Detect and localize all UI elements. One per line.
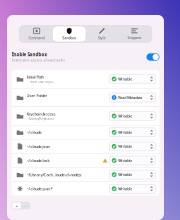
- staticText: Enable Sandbox: [11, 52, 46, 58]
- button[interactable]: Style: [85, 26, 118, 41]
- staticText: –: [24, 203, 26, 208]
- staticText: Writable: [118, 186, 132, 191]
- staticText: ~/Library/Cach…laude-cli-nodejs: [26, 172, 81, 177]
- staticText: Read Metadata: [118, 95, 142, 100]
- staticText: ~/.claude: [26, 130, 41, 135]
- button[interactable]: User Folder: [11, 88, 159, 106]
- staticText: ~/Library/Keychains: [26, 117, 53, 121]
- staticText: Keychain Access: [26, 111, 55, 117]
- staticText: Writable: [118, 144, 132, 149]
- staticText: ~/.claude.lock: [26, 158, 49, 163]
- button[interactable]: ~/.claude.json.*: [11, 182, 159, 195]
- button[interactable]: ~/.claude.json: [11, 140, 159, 153]
- staticText: Snippets: [127, 35, 141, 40]
- button[interactable]: Initial Path: [11, 70, 159, 88]
- staticText: Style: [98, 35, 106, 40]
- staticText: +: [16, 203, 18, 208]
- staticText: Writable: [118, 158, 132, 163]
- button[interactable]: Keychain Access: [11, 107, 159, 125]
- staticText: User Folder: [26, 93, 47, 98]
- button[interactable]: ~/.claude.lock: [11, 154, 159, 167]
- staticText: Sandbox: [62, 35, 76, 40]
- staticText: ~ From User Input: [26, 80, 53, 84]
- button[interactable]: Command: [20, 26, 53, 41]
- staticText: Writable: [118, 172, 132, 177]
- button[interactable]: Add path: [12, 202, 21, 208]
- button[interactable]: ~/Library/Cach…laude-cli-nodejs: [11, 168, 159, 181]
- staticText: ~/.claude.json.*: [26, 186, 52, 191]
- button[interactable]: Snippets: [118, 26, 151, 41]
- button[interactable]: Enable Sandbox: [146, 53, 159, 61]
- staticText: Command: [29, 35, 45, 40]
- staticText: Writable: [118, 130, 132, 135]
- button[interactable]: Sandbox: [53, 26, 85, 41]
- staticText: Initial Path: [26, 74, 43, 80]
- staticText: ~/.claude.json: [26, 144, 49, 149]
- staticText: Writable: [118, 113, 132, 119]
- staticText: Restrict write access to allowed paths: [11, 58, 64, 62]
- button[interactable]: ~/.claude: [11, 125, 159, 139]
- staticText: Writable: [118, 76, 132, 82]
